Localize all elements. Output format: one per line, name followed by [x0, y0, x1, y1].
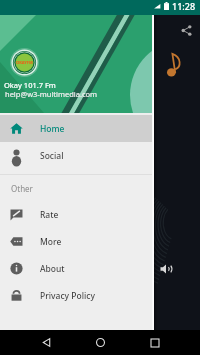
- button[interactable]: Rate: [0, 202, 154, 227]
- button[interactable]: Social: [0, 143, 154, 168]
- staticText: Privacy Policy: [40, 290, 95, 302]
- staticText: Other: [11, 183, 33, 194]
- button[interactable]: Home: [0, 115, 154, 142]
- staticText: More: [40, 236, 62, 248]
- button[interactable]: Home: [87, 330, 113, 355]
- staticText: 11:28: [172, 0, 196, 12]
- button[interactable]: Privacy Policy: [0, 283, 154, 308]
- button[interactable]: More: [0, 229, 154, 254]
- button[interactable]: Share: [181, 25, 192, 36]
- button[interactable]: About: [0, 256, 154, 281]
- staticText: OKAYFM: [16, 60, 33, 65]
- staticText: help@w3-multimedia.com: [5, 89, 98, 99]
- staticText: Social: [40, 150, 64, 162]
- staticText: Okay 101.7 Fm: [4, 80, 56, 90]
- button[interactable]: Back: [33, 330, 59, 355]
- button[interactable]: Volume: [160, 263, 172, 275]
- staticText: Home: [40, 123, 65, 135]
- staticText: Rate: [40, 209, 59, 221]
- button[interactable]: Recents: [142, 330, 168, 355]
- staticText: About: [40, 263, 65, 275]
